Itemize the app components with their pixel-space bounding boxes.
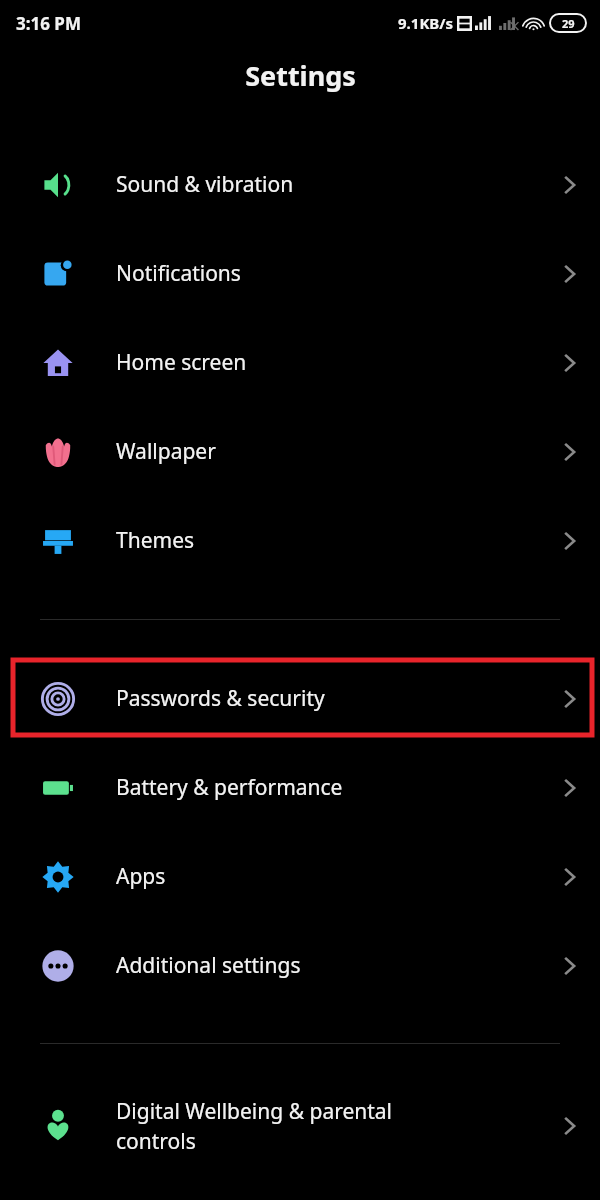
staticText: 9.1KB/s <box>398 13 454 33</box>
button[interactable]: Battery & performance <box>0 743 600 832</box>
button[interactable]: Home screen <box>0 318 600 407</box>
staticText: 29 <box>562 16 575 31</box>
button[interactable]: Additional settings <box>0 921 600 1010</box>
button[interactable]: Themes <box>0 496 600 585</box>
button[interactable]: Apps <box>0 832 600 921</box>
staticText: Sound & vibration <box>116 170 520 199</box>
staticText: Additional settings <box>116 951 520 980</box>
button[interactable]: Wallpaper <box>0 407 600 496</box>
button[interactable]: Notifications <box>0 229 600 318</box>
staticText: Themes <box>116 526 520 555</box>
button[interactable]: Passwords & security <box>0 654 600 743</box>
staticText: Apps <box>116 862 520 891</box>
staticText: Passwords & security <box>116 684 520 713</box>
staticText: Digital Wellbeing & parental controls <box>116 1097 520 1155</box>
staticText: Home screen <box>116 348 520 377</box>
staticText: Wallpaper <box>116 437 520 466</box>
staticText: Settings <box>245 57 356 94</box>
staticText: Notifications <box>116 259 520 288</box>
button[interactable]: Digital Wellbeing & parental controls <box>0 1078 600 1174</box>
staticText: Battery & performance <box>116 773 520 802</box>
staticText: 3:16 PM <box>16 12 81 35</box>
button[interactable]: Sound & vibration <box>0 140 600 229</box>
